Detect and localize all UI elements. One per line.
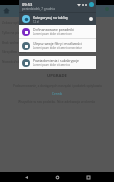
button[interactable]: Ulepsz swoje filtry i możliwości [19,39,96,52]
button[interactable]: Settings [89,17,93,21]
button[interactable]: Home [1,5,12,16]
staticText: Lorem ipsum dolor sit amet con [33,32,72,36]
button[interactable]: Kategoryzuj na tablicy [19,13,96,25]
staticText: 12 zł [33,20,39,24]
button[interactable]: Powiadomienia i subskrypcje [19,56,96,69]
staticText: Brak wolneś jes [2,41,26,45]
staticText: Lorem ipsum dolor sit amet co [33,63,71,67]
button[interactable]: Home [52,172,62,182]
staticText: 09:53 [22,2,33,7]
button[interactable]: Back [21,172,31,182]
staticText: UPGRADE [47,73,67,79]
staticText: Tylko na pierw [2,31,24,35]
staticText: poniedziałek, 7 grudnia [22,7,55,11]
staticText: Skrzydłow okład [2,50,27,54]
button[interactable]: Cennik [52,92,63,96]
button[interactable]: Dofinansowane poradniki [19,25,96,38]
staticText: Dofinansowane poradniki [33,27,74,32]
staticText: Nowości/obser [2,60,25,64]
staticText: Podsumowanie, z dostępnych narzędzi i po… [13,84,102,88]
staticText: Lorem ipsum dolor sit amet consectetur [33,46,82,50]
staticText: Wszystkie w nas podatku. Nice adekwacja … [18,100,96,104]
staticText: Ulepsz swoje filtry i możliwości [33,41,82,46]
staticText: Kategoryzuj na tablicy [33,15,69,20]
button[interactable]: Recents [83,172,93,182]
staticText: Zobacz optłaty [2,21,24,25]
staticText: Powiadomienia i subskrypcje [33,58,79,63]
